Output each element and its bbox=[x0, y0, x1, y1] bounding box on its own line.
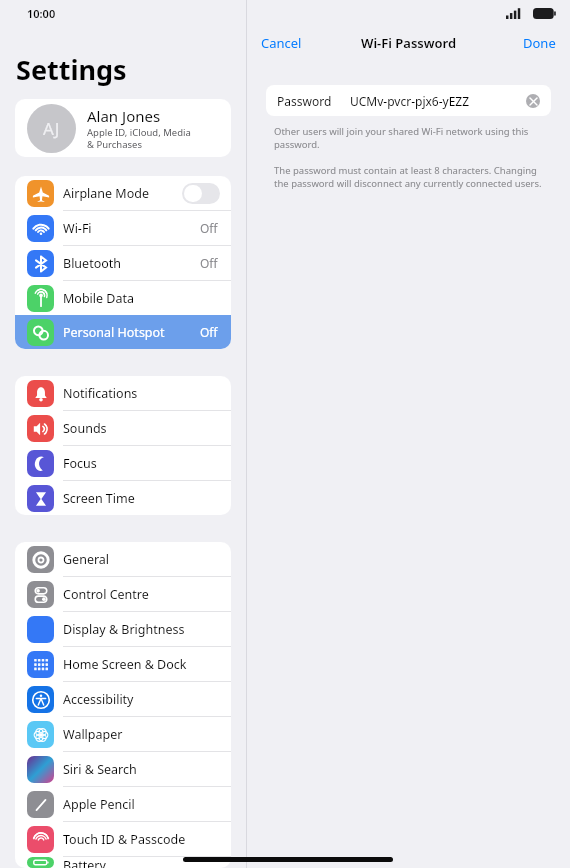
staticText: Off bbox=[200, 220, 218, 236]
button[interactable]: Accessibility bbox=[15, 682, 231, 716]
staticText: Wi-Fi bbox=[63, 220, 92, 237]
staticText: Off bbox=[200, 255, 218, 271]
staticText: Apple Pencil bbox=[63, 796, 135, 813]
button[interactable]: Personal Hotspot bbox=[15, 315, 231, 349]
button[interactable]: Screen Time bbox=[15, 481, 231, 515]
staticText: Sounds bbox=[63, 420, 107, 437]
staticText: Alan Jones bbox=[87, 106, 161, 126]
button[interactable]: Touch ID & Passcode bbox=[15, 822, 231, 856]
staticText: Settings bbox=[16, 51, 127, 88]
staticText: Wi-Fi Password bbox=[361, 34, 457, 52]
staticText: Personal Hotspot bbox=[63, 324, 165, 341]
staticText: Notifications bbox=[63, 385, 138, 402]
button[interactable]: Home Screen & Dock bbox=[15, 647, 231, 681]
staticText: Apple ID, iCloud, Media & Purchases bbox=[87, 126, 191, 151]
staticText: Mobile Data bbox=[63, 290, 135, 307]
button[interactable]: General bbox=[15, 542, 231, 576]
staticText: The password must contain at least 8 cha… bbox=[274, 164, 543, 190]
button[interactable]: Done bbox=[509, 28, 570, 58]
button[interactable]: Mobile Data bbox=[15, 281, 231, 315]
staticText: Control Centre bbox=[63, 586, 149, 603]
staticText: Airplane Mode bbox=[63, 185, 149, 202]
staticText: AJ bbox=[43, 117, 60, 140]
button[interactable]: Wallpaper bbox=[15, 717, 231, 751]
button[interactable]: Airplane Mode bbox=[15, 176, 231, 210]
button[interactable]: Bluetooth bbox=[15, 246, 231, 280]
staticText: Other users will join your shared Wi-Fi … bbox=[274, 125, 543, 151]
staticText: Cancel bbox=[261, 34, 302, 52]
staticText: UCMv-pvcr-pjx6-yEZZ bbox=[350, 93, 470, 109]
staticText: Siri & Search bbox=[63, 761, 137, 778]
staticText: Touch ID & Passcode bbox=[63, 831, 186, 848]
button[interactable]: AJ bbox=[15, 99, 231, 157]
button[interactable]: Cancel bbox=[247, 28, 316, 58]
button[interactable]: Siri & Search bbox=[15, 752, 231, 786]
button[interactable]: Clear password bbox=[526, 94, 540, 108]
button[interactable]: Control Centre bbox=[15, 577, 231, 611]
staticText: Off bbox=[200, 324, 218, 340]
button[interactable]: Password bbox=[266, 85, 551, 116]
button[interactable]: Notifications bbox=[15, 376, 231, 410]
button[interactable]: Wi-Fi bbox=[15, 211, 231, 245]
staticText: Done bbox=[523, 34, 556, 52]
staticText: 10:00 bbox=[27, 6, 56, 21]
button[interactable]: Display & Brightness bbox=[15, 612, 231, 646]
staticText: General bbox=[63, 551, 110, 568]
staticText: Focus bbox=[63, 455, 97, 472]
button[interactable]: Airplane Mode toggle bbox=[182, 183, 220, 204]
staticText: Wallpaper bbox=[63, 726, 123, 743]
staticText: Home Screen & Dock bbox=[63, 656, 187, 673]
staticText: Password bbox=[277, 93, 332, 109]
button[interactable]: Sounds bbox=[15, 411, 231, 445]
button[interactable]: Focus bbox=[15, 446, 231, 480]
staticText: Accessibility bbox=[63, 691, 134, 708]
button[interactable]: Battery bbox=[15, 857, 231, 868]
staticText: Battery bbox=[63, 857, 106, 868]
staticText: Display & Brightness bbox=[63, 621, 185, 638]
staticText: Screen Time bbox=[63, 490, 135, 507]
button[interactable]: Apple Pencil bbox=[15, 787, 231, 821]
staticText: Bluetooth bbox=[63, 255, 122, 272]
